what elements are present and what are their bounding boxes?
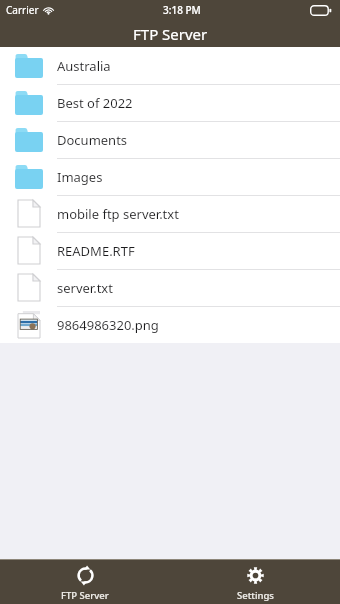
- staticText: FTP Server: [61, 589, 109, 602]
- staticText: Settings: [237, 589, 274, 602]
- staticText: Carrier: [6, 3, 39, 17]
- button[interactable]: Best of 2022: [0, 84, 340, 121]
- button[interactable]: Documents: [0, 121, 340, 158]
- staticText: Best of 2022: [57, 94, 133, 112]
- staticText: 9864986320.png: [57, 316, 159, 334]
- staticText: README.RTF: [57, 242, 135, 260]
- button[interactable]: README.RTF: [0, 232, 340, 269]
- button[interactable]: server.txt: [0, 269, 340, 306]
- button[interactable]: Australia: [0, 47, 340, 84]
- staticText: server.txt: [57, 279, 113, 297]
- staticText: 3:18 PM: [163, 3, 201, 17]
- staticText: Images: [57, 168, 103, 186]
- button[interactable]: FTP Server: [0, 560, 170, 602]
- button[interactable]: Settings: [170, 560, 340, 602]
- staticText: mobile ftp server.txt: [57, 205, 179, 223]
- button[interactable]: mobile ftp server.txt: [0, 195, 340, 232]
- staticText: Documents: [57, 131, 128, 149]
- staticText: Australia: [57, 57, 111, 75]
- button[interactable]: 9864986320.png: [0, 306, 340, 343]
- staticText: FTP Server: [133, 24, 208, 44]
- button[interactable]: Images: [0, 158, 340, 195]
